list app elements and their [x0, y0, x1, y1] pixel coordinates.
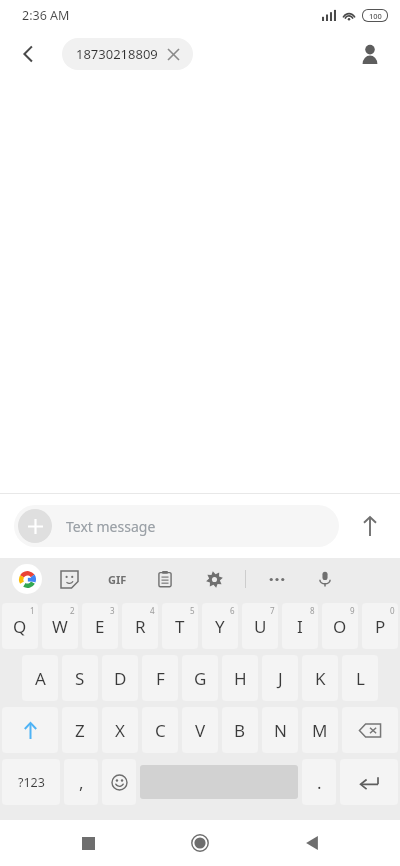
- button[interactable]: N: [262, 707, 298, 753]
- staticText: 18730218809: [76, 45, 158, 63]
- button[interactable]: Enter: [340, 759, 398, 805]
- staticText: O: [333, 615, 347, 638]
- button[interactable]: D: [102, 655, 138, 701]
- staticText: .: [317, 771, 322, 794]
- button[interactable]: W: [42, 603, 78, 649]
- staticText: B: [234, 719, 246, 742]
- staticText: Text message: [66, 517, 156, 536]
- staticText: 6: [230, 605, 235, 616]
- staticText: W: [52, 615, 68, 638]
- button[interactable]: ?123: [2, 759, 60, 805]
- button[interactable]: Z: [62, 707, 98, 753]
- staticText: 5: [190, 605, 195, 616]
- button[interactable]: More: [260, 562, 294, 596]
- button[interactable]: Clipboard: [148, 562, 182, 596]
- staticText: 100: [369, 11, 382, 21]
- button[interactable]: Back: [8, 34, 48, 74]
- staticText: J: [278, 667, 283, 690]
- button[interactable]: I: [282, 603, 318, 649]
- staticText: S: [75, 667, 85, 690]
- button[interactable]: O: [322, 603, 358, 649]
- staticText: R: [135, 615, 146, 638]
- button[interactable]: R: [122, 603, 158, 649]
- staticText: 8: [310, 605, 315, 616]
- staticText: ?123: [18, 774, 45, 791]
- button[interactable]: F: [142, 655, 178, 701]
- staticText: 2:36 AM: [22, 7, 70, 24]
- staticText: X: [115, 719, 125, 742]
- button[interactable]: S: [62, 655, 98, 701]
- button[interactable]: X: [102, 707, 138, 753]
- staticText: Y: [215, 615, 225, 638]
- button[interactable]: GIF: [100, 562, 134, 596]
- button[interactable]: Google: [12, 564, 42, 594]
- staticText: V: [195, 719, 206, 742]
- staticText: G: [194, 667, 207, 690]
- button[interactable]: Home: [176, 820, 224, 866]
- button[interactable]: Emoji: [102, 759, 136, 805]
- button[interactable]: P: [362, 603, 398, 649]
- button[interactable]: G: [182, 655, 218, 701]
- staticText: L: [356, 667, 365, 690]
- button[interactable]: T: [162, 603, 198, 649]
- button[interactable]: B: [222, 707, 258, 753]
- button[interactable]: 18730218809: [62, 38, 193, 70]
- button[interactable]: Send: [348, 504, 392, 548]
- button[interactable]: L: [342, 655, 378, 701]
- button[interactable]: Backspace: [342, 707, 398, 753]
- staticText: Z: [75, 719, 85, 742]
- button[interactable]: Contact: [350, 34, 390, 74]
- staticText: F: [156, 667, 165, 690]
- button[interactable]: J: [262, 655, 298, 701]
- button[interactable]: Q: [2, 603, 38, 649]
- button[interactable]: A: [22, 655, 58, 701]
- button[interactable]: V: [182, 707, 218, 753]
- button[interactable]: Y: [202, 603, 238, 649]
- button[interactable]: M: [302, 707, 338, 753]
- button[interactable]: Voice input: [308, 562, 342, 596]
- staticText: N: [274, 719, 287, 742]
- staticText: ,: [79, 771, 84, 794]
- staticText: C: [155, 719, 166, 742]
- button[interactable]: Back: [288, 820, 336, 866]
- button[interactable]: E: [82, 603, 118, 649]
- button[interactable]: ,: [64, 759, 98, 805]
- button[interactable]: U: [242, 603, 278, 649]
- staticText: 4: [150, 605, 155, 616]
- staticText: K: [315, 667, 326, 690]
- button[interactable]: Shift: [2, 707, 58, 753]
- staticText: 0: [390, 605, 395, 616]
- staticText: Q: [13, 615, 27, 638]
- staticText: M: [312, 719, 328, 742]
- button[interactable]: Recents: [64, 820, 112, 866]
- staticText: D: [114, 667, 127, 690]
- button[interactable]: .: [302, 759, 336, 805]
- staticText: H: [234, 667, 247, 690]
- staticText: 1: [30, 605, 35, 616]
- staticText: GIF: [108, 572, 127, 587]
- staticText: I: [297, 615, 303, 638]
- staticText: U: [254, 615, 267, 638]
- staticText: 2: [70, 605, 75, 616]
- button[interactable]: Stickers: [52, 562, 86, 596]
- staticText: T: [175, 615, 185, 638]
- button[interactable]: Settings: [197, 562, 231, 596]
- staticText: 7: [270, 605, 275, 616]
- button[interactable]: H: [222, 655, 258, 701]
- staticText: 3: [110, 605, 115, 616]
- button[interactable]: Text message: [14, 505, 339, 547]
- staticText: A: [35, 667, 46, 690]
- staticText: E: [95, 615, 105, 638]
- button[interactable]: C: [142, 707, 178, 753]
- button[interactable]: K: [302, 655, 338, 701]
- staticText: P: [375, 615, 386, 638]
- staticText: 9: [350, 605, 355, 616]
